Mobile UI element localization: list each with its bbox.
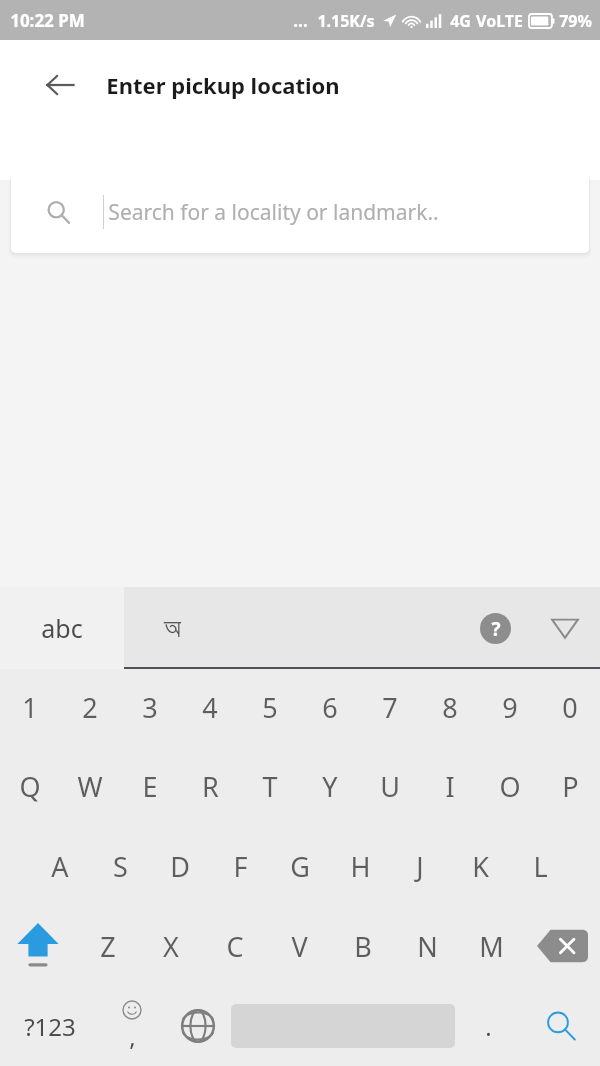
staticText: A xyxy=(51,848,69,885)
staticText: 1.15K/s xyxy=(317,10,375,32)
staticText: 7 xyxy=(382,689,398,726)
button[interactable]: T xyxy=(240,746,300,826)
staticText: 4 xyxy=(202,689,218,726)
staticText: S xyxy=(113,848,128,885)
staticText: K xyxy=(472,848,489,885)
button[interactable]: 2 xyxy=(60,669,120,746)
staticText: 3 xyxy=(142,689,158,726)
button[interactable]: M xyxy=(459,906,523,986)
staticText: ... xyxy=(293,9,308,32)
button[interactable]: 3 xyxy=(120,669,180,746)
button[interactable]: 8 xyxy=(420,669,480,746)
staticText: , xyxy=(129,1020,136,1053)
button[interactable]: Q xyxy=(0,746,60,826)
button[interactable]: C xyxy=(203,906,267,986)
button[interactable]: Z xyxy=(76,906,139,986)
button[interactable]: D xyxy=(150,826,210,906)
staticText: L xyxy=(533,848,548,885)
staticText: O xyxy=(499,768,521,805)
staticText: Z xyxy=(100,928,116,965)
staticText: R xyxy=(202,768,219,805)
button[interactable]: W xyxy=(60,746,120,826)
button[interactable]: I xyxy=(420,746,480,826)
button[interactable]: Help xyxy=(460,593,530,663)
staticText: 6 xyxy=(322,689,338,726)
staticText: ?123 xyxy=(24,1010,76,1043)
button[interactable]: abc xyxy=(0,587,124,669)
button[interactable]: A xyxy=(30,826,90,906)
button[interactable]: Search for a locality or landmark.. xyxy=(11,171,589,253)
button[interactable]: Change language xyxy=(165,986,231,1066)
staticText: E xyxy=(142,768,158,805)
staticText: VoLTE xyxy=(476,10,523,32)
button[interactable]: F xyxy=(210,826,270,906)
staticText: C xyxy=(226,928,244,965)
staticText: 1 xyxy=(22,689,38,726)
button[interactable]: E xyxy=(120,746,180,826)
button[interactable]: 6 xyxy=(300,669,360,746)
staticText: 8 xyxy=(442,689,458,726)
button[interactable]: U xyxy=(360,746,420,826)
staticText: P xyxy=(562,768,579,805)
button[interactable]: K xyxy=(450,826,510,906)
button[interactable]: . xyxy=(455,986,521,1066)
staticText: 9 xyxy=(502,689,518,726)
staticText: G xyxy=(290,848,310,885)
button[interactable]: Hide keyboard xyxy=(530,593,600,663)
staticText: W xyxy=(77,768,103,805)
button[interactable]: অ xyxy=(124,587,460,669)
button[interactable]: O xyxy=(480,746,540,826)
staticText: U xyxy=(380,768,400,805)
staticText: Search for a locality or landmark.. xyxy=(108,198,439,227)
staticText: 79% xyxy=(559,10,592,32)
staticText: Q xyxy=(19,768,41,805)
button[interactable]: Back xyxy=(30,55,90,115)
staticText: ? xyxy=(491,616,501,642)
button[interactable]: X xyxy=(139,906,203,986)
staticText: F xyxy=(233,848,248,885)
button[interactable]: Search xyxy=(521,986,600,1066)
button[interactable]: 7 xyxy=(360,669,420,746)
button[interactable]: V xyxy=(267,906,331,986)
staticText: . xyxy=(485,1010,492,1043)
staticText: T xyxy=(262,768,278,805)
button[interactable]: Backspace xyxy=(523,906,600,986)
staticText: 5 xyxy=(262,689,278,726)
staticText: V xyxy=(291,928,308,965)
button[interactable]: 0 xyxy=(540,669,600,746)
staticText: 10:22 PM xyxy=(10,9,85,32)
button[interactable]: Emoji and comma xyxy=(99,986,165,1066)
button[interactable]: N xyxy=(395,906,459,986)
button[interactable]: ?123 xyxy=(0,986,99,1066)
button[interactable]: L xyxy=(510,826,570,906)
staticText: 4G xyxy=(450,10,471,32)
staticText: D xyxy=(170,848,190,885)
button[interactable]: 4 xyxy=(180,669,240,746)
button[interactable]: Shift xyxy=(0,906,76,986)
staticText: abc xyxy=(41,611,83,645)
staticText: Y xyxy=(322,768,338,805)
button[interactable]: H xyxy=(330,826,390,906)
staticText: X xyxy=(163,928,179,965)
button[interactable]: 1 xyxy=(0,669,60,746)
staticText: 2 xyxy=(82,689,98,726)
staticText: অ xyxy=(164,615,181,642)
button[interactable]: 9 xyxy=(480,669,540,746)
button[interactable]: G xyxy=(270,826,330,906)
staticText: 0 xyxy=(562,689,578,726)
staticText: M xyxy=(479,928,504,965)
button[interactable]: R xyxy=(180,746,240,826)
staticText: H xyxy=(350,848,371,885)
button[interactable]: J xyxy=(390,826,450,906)
staticText: Enter pickup location xyxy=(106,70,340,100)
button[interactable]: Y xyxy=(300,746,360,826)
staticText: N xyxy=(417,928,438,965)
button[interactable]: 5 xyxy=(240,669,300,746)
staticText: J xyxy=(416,848,424,885)
staticText: B xyxy=(354,928,372,965)
staticText: I xyxy=(445,768,455,805)
button[interactable]: P xyxy=(540,746,600,826)
button[interactable]: S xyxy=(90,826,150,906)
button[interactable]: B xyxy=(331,906,395,986)
button[interactable]: Space xyxy=(231,986,455,1066)
